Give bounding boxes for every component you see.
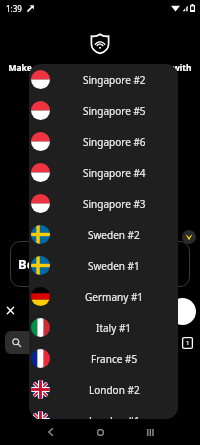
button[interactable]: London #2 [29,374,178,405]
button[interactable]: France #5 [29,343,178,374]
button[interactable]: Best server location [10,241,190,287]
staticText: London #2 [89,383,140,397]
button[interactable]: Singapore #5 [29,95,178,126]
staticText: Singapore #4 [83,166,146,180]
staticText: Make your internet connection secure wit… [6,62,194,86]
button[interactable]: Singapore #2 [29,64,178,95]
staticText: Singapore #2 [83,73,146,87]
button[interactable]: Sweden #2 [29,219,178,250]
staticText: 1 [186,339,190,347]
staticText: Sweden #2 [88,228,140,242]
button[interactable]: Singapore #3 [29,188,178,219]
staticText: Sweden #1 [88,259,140,273]
staticText: London #1 [89,414,140,419]
staticText: 1:39 [6,3,22,14]
button[interactable]: Germany #1 [29,281,178,312]
button[interactable]: Italy #1 [29,312,178,343]
staticText: Germany #1 [85,290,144,304]
button[interactable]: Recents [138,419,162,445]
button[interactable] [5,331,125,354]
staticText: Singapore #5 [83,104,146,118]
button[interactable]: Home [88,419,112,445]
button[interactable]: Singapore #4 [29,157,178,188]
button[interactable]: Sweden #1 [29,250,178,281]
staticText: Singapore #6 [83,135,146,149]
button[interactable]: London #1 [29,405,178,419]
staticText: France #5 [91,352,138,366]
button[interactable]: Close [6,306,15,315]
button[interactable]: Singapore #6 [29,126,178,157]
staticText: Singapore #3 [83,197,146,211]
button[interactable]: Back [38,419,62,445]
staticText: Best server location [18,255,148,273]
staticText: Italy #1 [96,321,132,335]
